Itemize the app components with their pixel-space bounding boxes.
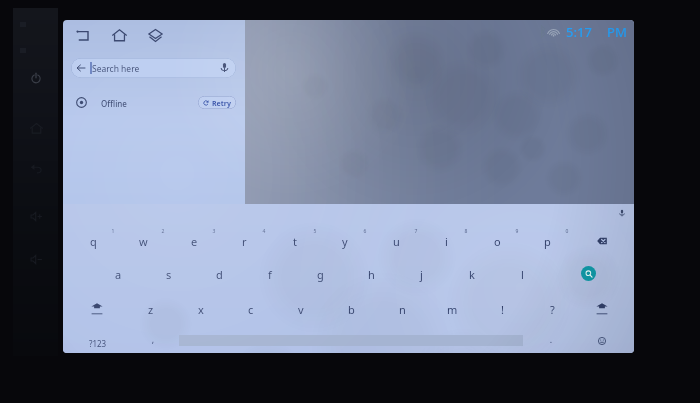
- button[interactable]: n: [388, 299, 416, 319]
- button[interactable]: Emoji: [594, 333, 610, 349]
- button[interactable]: j: [407, 264, 435, 284]
- staticText: y: [342, 234, 348, 249]
- button[interactable]: s: [155, 264, 183, 284]
- button[interactable]: w: [129, 231, 157, 251]
- staticText: u: [393, 234, 400, 249]
- button[interactable]: p: [533, 231, 561, 251]
- staticText: d: [216, 267, 223, 282]
- staticText: 7: [410, 228, 422, 235]
- staticText: s: [166, 267, 172, 282]
- button[interactable]: a: [104, 264, 132, 284]
- staticText: e: [191, 234, 198, 249]
- button[interactable]: k: [458, 264, 486, 284]
- button[interactable]: q: [79, 231, 107, 251]
- button[interactable]: x: [187, 299, 215, 319]
- button[interactable]: Layers: [145, 25, 165, 45]
- staticText: 9: [511, 228, 523, 235]
- staticText: r: [242, 234, 247, 249]
- staticText: ?: [550, 302, 555, 317]
- button[interactable]: Offline: [71, 93, 191, 113]
- staticText: ?123: [89, 338, 107, 349]
- button[interactable]: Shift: [591, 298, 613, 320]
- button[interactable]: f: [256, 264, 284, 284]
- staticText: 4: [258, 228, 270, 235]
- button[interactable]: y: [331, 231, 359, 251]
- button[interactable]: Shift: [86, 298, 108, 320]
- staticText: 6: [359, 228, 371, 235]
- staticText: Search here: [92, 63, 140, 75]
- staticText: b: [348, 302, 355, 317]
- button[interactable]: g: [306, 264, 334, 284]
- staticText: h: [368, 267, 375, 282]
- staticText: 5: [309, 228, 321, 235]
- staticText: x: [198, 302, 204, 317]
- staticText: 0: [561, 228, 573, 235]
- button[interactable]: c: [237, 299, 265, 319]
- button[interactable]: e: [180, 231, 208, 251]
- button[interactable]: ?123: [81, 334, 115, 352]
- button[interactable]: h: [357, 264, 385, 284]
- staticText: f: [268, 267, 272, 282]
- staticText: 5:17: [566, 23, 592, 41]
- button[interactable]: Home: [109, 25, 129, 45]
- staticText: k: [469, 267, 475, 282]
- staticText: w: [139, 234, 148, 249]
- button[interactable]: i: [432, 231, 460, 251]
- button[interactable]: r: [230, 231, 258, 251]
- staticText: l: [521, 267, 524, 282]
- button[interactable]: Search: [581, 266, 596, 281]
- button[interactable]: ?: [538, 299, 566, 319]
- staticText: PM: [607, 23, 627, 41]
- staticText: p: [544, 234, 551, 249]
- staticText: Offline: [101, 98, 127, 109]
- button[interactable]: d: [205, 264, 233, 284]
- button[interactable]: Search here: [71, 58, 236, 78]
- staticText: !: [501, 302, 504, 317]
- staticText: j: [420, 267, 423, 282]
- staticText: v: [298, 302, 304, 317]
- staticText: 8: [460, 228, 472, 235]
- staticText: c: [248, 302, 254, 317]
- button[interactable]: z: [137, 299, 165, 319]
- button[interactable]: Retry: [198, 96, 236, 109]
- button[interactable]: t: [281, 231, 309, 251]
- button[interactable]: !: [488, 299, 516, 319]
- staticText: t: [293, 234, 297, 249]
- button[interactable]: Backspace: [591, 230, 613, 252]
- staticText: 1: [107, 228, 119, 235]
- button[interactable]: u: [382, 231, 410, 251]
- staticText: .: [546, 333, 556, 345]
- button[interactable]: Recent apps: [73, 25, 93, 45]
- staticText: m: [447, 302, 458, 317]
- staticText: 3: [208, 228, 220, 235]
- button[interactable]: l: [508, 264, 536, 284]
- button[interactable]: v: [287, 299, 315, 319]
- staticText: n: [399, 302, 406, 317]
- staticText: ,: [148, 333, 158, 345]
- button[interactable]: Voice input: [615, 206, 629, 220]
- staticText: Retry: [212, 99, 231, 109]
- button[interactable]: Power: [19, 61, 53, 95]
- staticText: i: [445, 234, 448, 249]
- button[interactable]: m: [438, 299, 466, 319]
- staticText: a: [115, 267, 122, 282]
- staticText: 2: [157, 228, 169, 235]
- button[interactable]: b: [337, 299, 365, 319]
- staticText: o: [494, 234, 501, 249]
- staticText: q: [90, 234, 97, 249]
- staticText: g: [317, 267, 324, 282]
- button[interactable]: o: [483, 231, 511, 251]
- staticText: z: [148, 302, 154, 317]
